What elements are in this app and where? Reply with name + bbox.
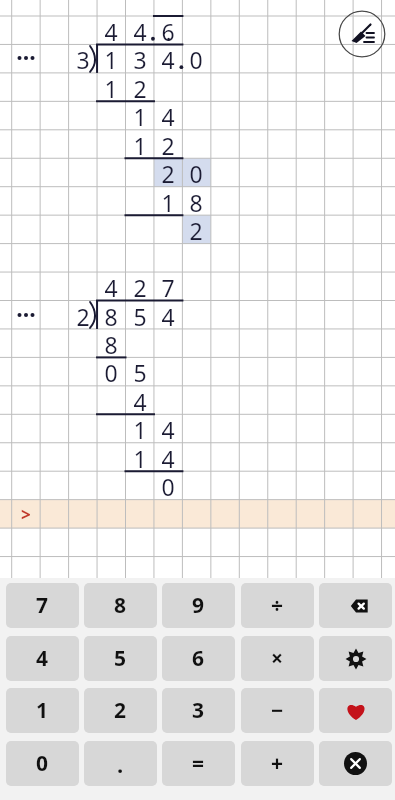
button[interactable]: . (84, 741, 157, 786)
staticText: 1 (133, 130, 147, 158)
staticText: > (21, 503, 31, 526)
staticText: 2 (161, 130, 175, 158)
staticText: 7 (36, 591, 49, 620)
staticText: 8 (114, 591, 127, 620)
staticText: 1 (133, 443, 147, 471)
button[interactable]: Backspace (319, 583, 392, 628)
staticText: 5 (114, 644, 127, 673)
button[interactable]: 0 (6, 741, 79, 786)
staticText: 4 (161, 301, 175, 329)
staticText: 6 (161, 16, 175, 44)
staticText: 2 (161, 158, 175, 186)
button[interactable]: 2 (84, 688, 157, 733)
staticText: 2 (133, 272, 147, 300)
staticText: 0 (104, 357, 118, 385)
button[interactable]: Row options (12, 301, 40, 329)
staticText: 2 (133, 73, 147, 101)
staticText: 4 (36, 644, 49, 673)
staticText: 5 (133, 357, 147, 385)
button[interactable]: 8 (84, 583, 157, 628)
staticText: 1 (133, 414, 147, 442)
staticText: = (192, 749, 205, 778)
staticText: 7 (161, 272, 175, 300)
button[interactable]: Clear sheet (338, 10, 386, 58)
button[interactable]: 7 (6, 583, 79, 628)
staticText: 1 (36, 696, 49, 725)
staticText: × (271, 644, 284, 673)
staticText: 1 (104, 73, 118, 101)
button[interactable]: ÷ (241, 583, 314, 628)
staticText: . (165, 16, 172, 44)
button[interactable]: = (162, 741, 235, 786)
button[interactable]: 4 (6, 636, 79, 681)
staticText: + (271, 749, 284, 778)
staticText: 4 (104, 16, 118, 44)
staticText: 0 (161, 471, 175, 499)
staticText: 0 (189, 44, 203, 72)
staticText: 4 (161, 443, 175, 471)
staticText: 1 (133, 101, 147, 129)
staticText: 4 (133, 16, 147, 44)
button[interactable]: × (241, 636, 314, 681)
staticText: 0 (36, 749, 49, 778)
button[interactable]: 1 (6, 688, 79, 733)
button[interactable]: Row options (12, 44, 40, 72)
button[interactable]: 6 (162, 636, 235, 681)
staticText: 3 (76, 44, 90, 72)
staticText: 4 (161, 44, 175, 72)
staticText: ÷ (271, 591, 284, 620)
button[interactable]: Favourite (319, 688, 392, 733)
staticText: 1 (104, 44, 118, 72)
staticText: 8 (189, 187, 203, 215)
staticText: 5 (133, 301, 147, 329)
staticText: 2 (114, 696, 127, 725)
staticText: 4 (161, 414, 175, 442)
staticText: 0 (189, 158, 203, 186)
staticText: 2 (189, 215, 203, 243)
staticText: 3 (192, 696, 205, 725)
button[interactable]: 5 (84, 636, 157, 681)
button[interactable]: − (241, 688, 314, 733)
staticText: 2 (76, 301, 90, 329)
button[interactable]: 3 (162, 688, 235, 733)
staticText: 4 (104, 272, 118, 300)
staticText: 6 (192, 644, 205, 673)
staticText: 1 (161, 187, 175, 215)
staticText: 3 (133, 44, 147, 72)
button[interactable]: Settings (319, 636, 392, 681)
staticText: 4 (133, 386, 147, 414)
button[interactable]: Close (319, 741, 392, 786)
staticText: 9 (192, 591, 205, 620)
staticText: − (271, 696, 284, 725)
staticText: 4 (161, 101, 175, 129)
button[interactable]: 9 (162, 583, 235, 628)
staticText: . (117, 749, 124, 779)
staticText: 8 (104, 329, 118, 357)
button[interactable]: + (241, 741, 314, 786)
staticText: 8 (104, 301, 118, 329)
